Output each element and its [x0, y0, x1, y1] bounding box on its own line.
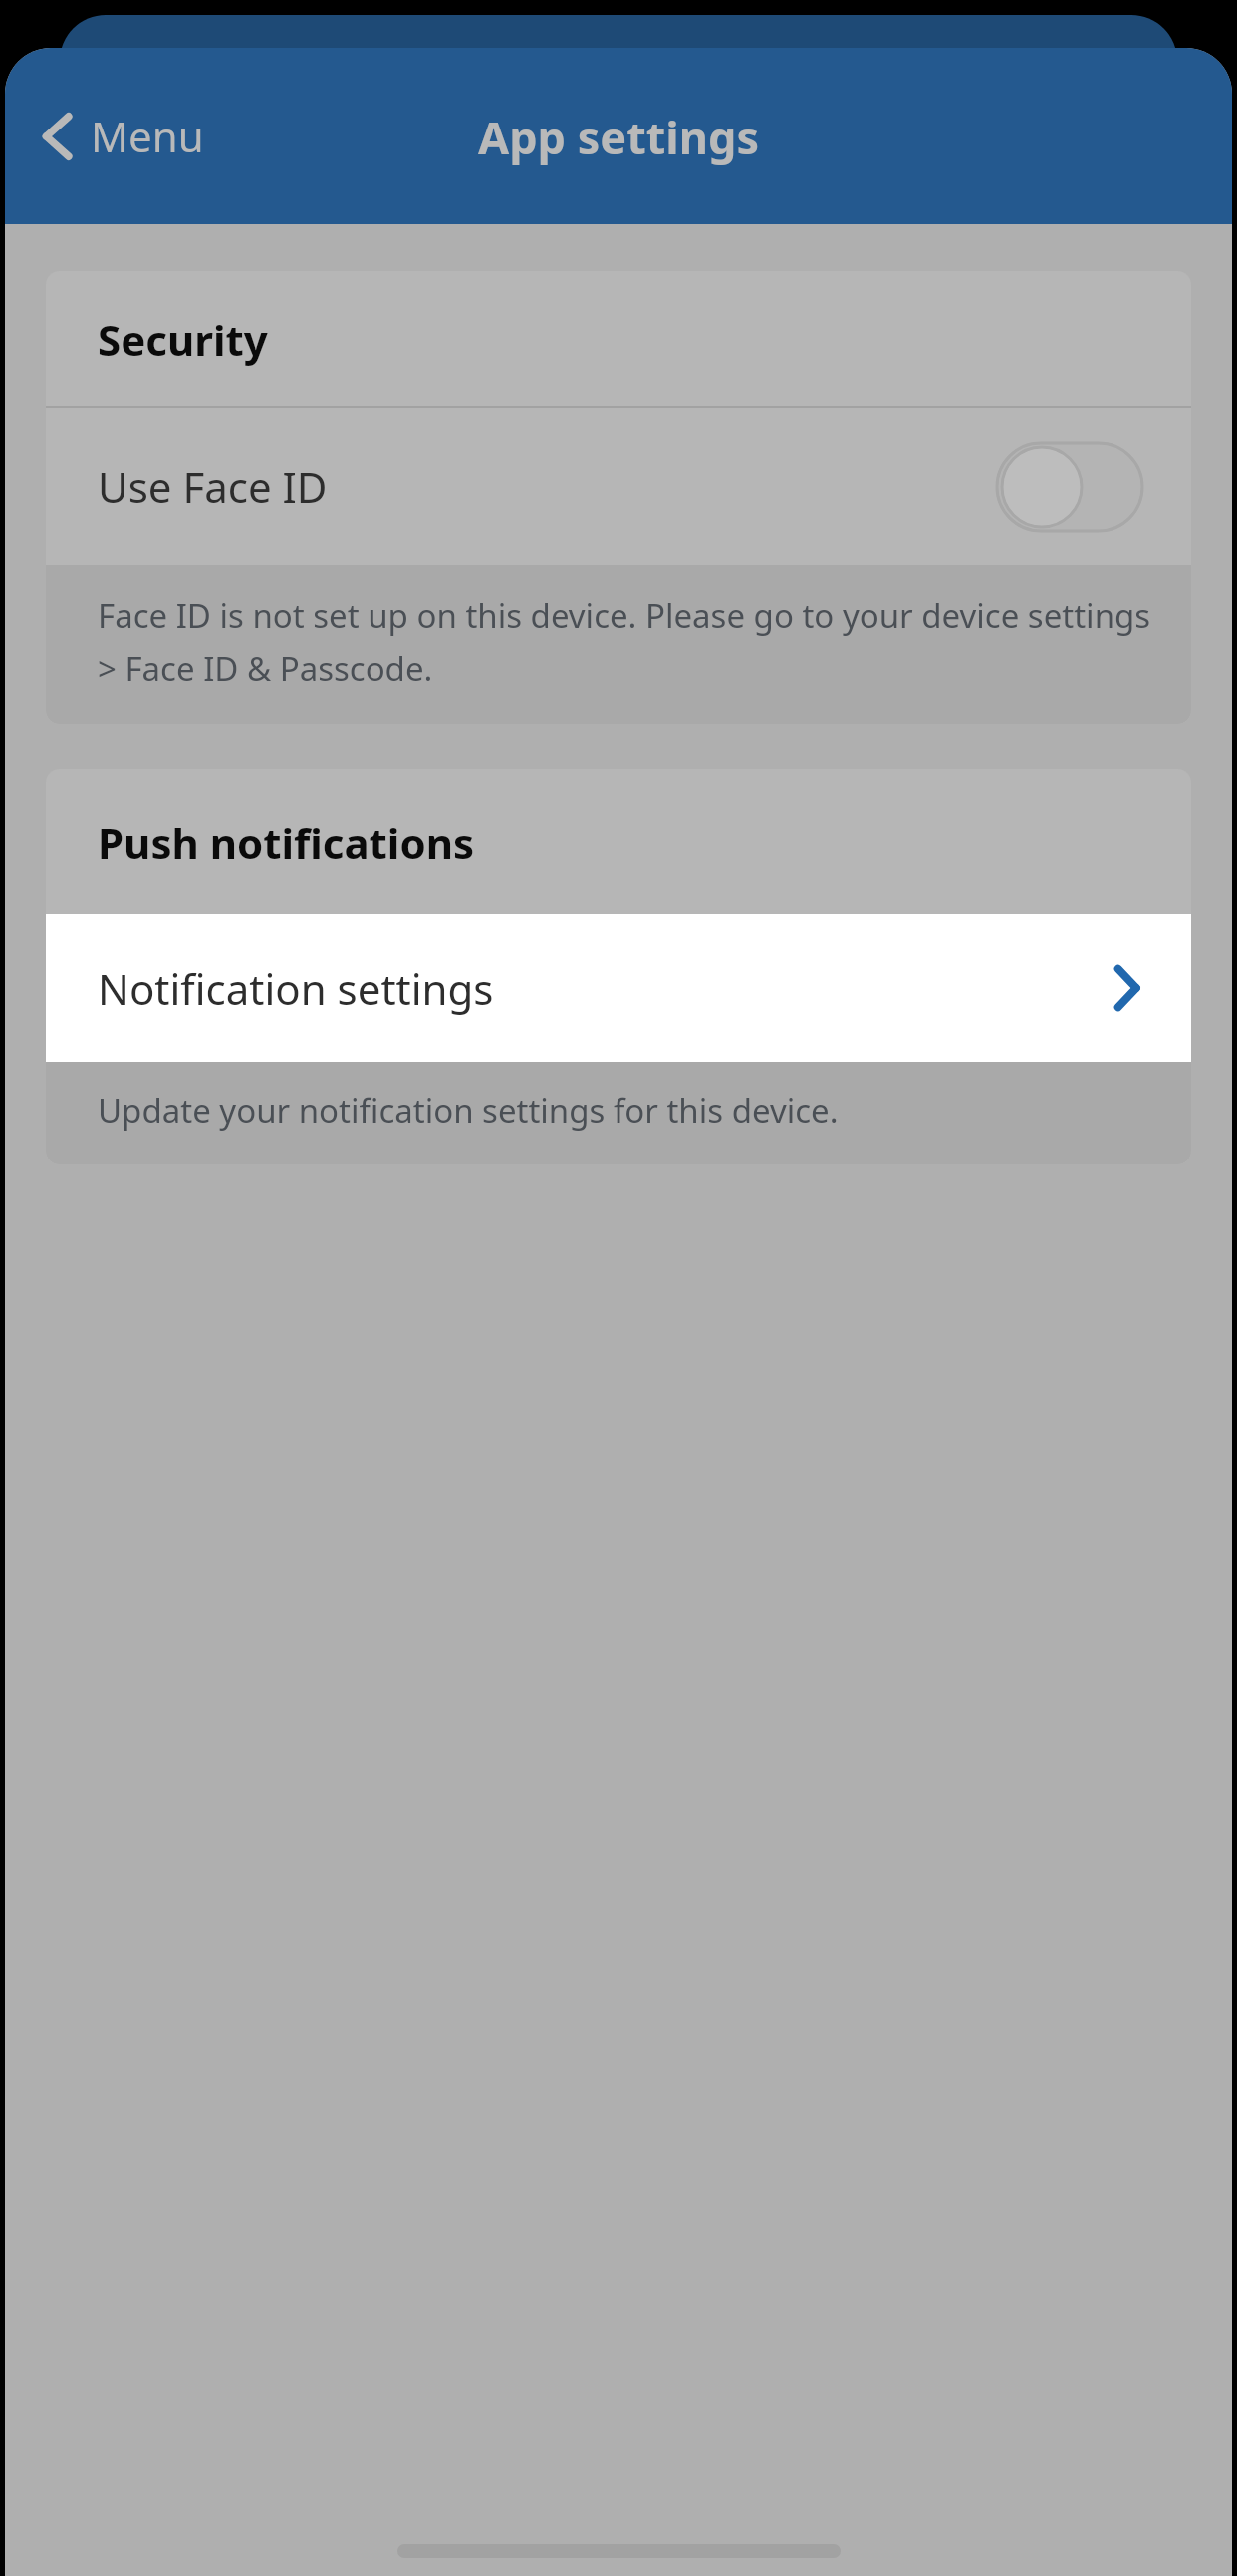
staticText: Notification settings [98, 960, 1113, 1017]
button[interactable]: Use Face ID toggle, off [996, 442, 1143, 532]
staticText: Update your notification settings for th… [98, 1088, 839, 1133]
other: Open notification settings [1113, 966, 1139, 1010]
button[interactable]: Menu [33, 98, 212, 174]
button[interactable]: Notification settings [46, 914, 1191, 1062]
staticText: Security [98, 311, 268, 368]
staticText: Use Face ID [98, 458, 996, 515]
staticText: App settings [478, 107, 759, 167]
staticText: Push notifications [98, 814, 475, 871]
button[interactable]: Use Face ID [46, 408, 1191, 565]
staticText: Face ID is not set up on this device. Pl… [98, 593, 1151, 690]
staticText: Menu [91, 108, 204, 164]
